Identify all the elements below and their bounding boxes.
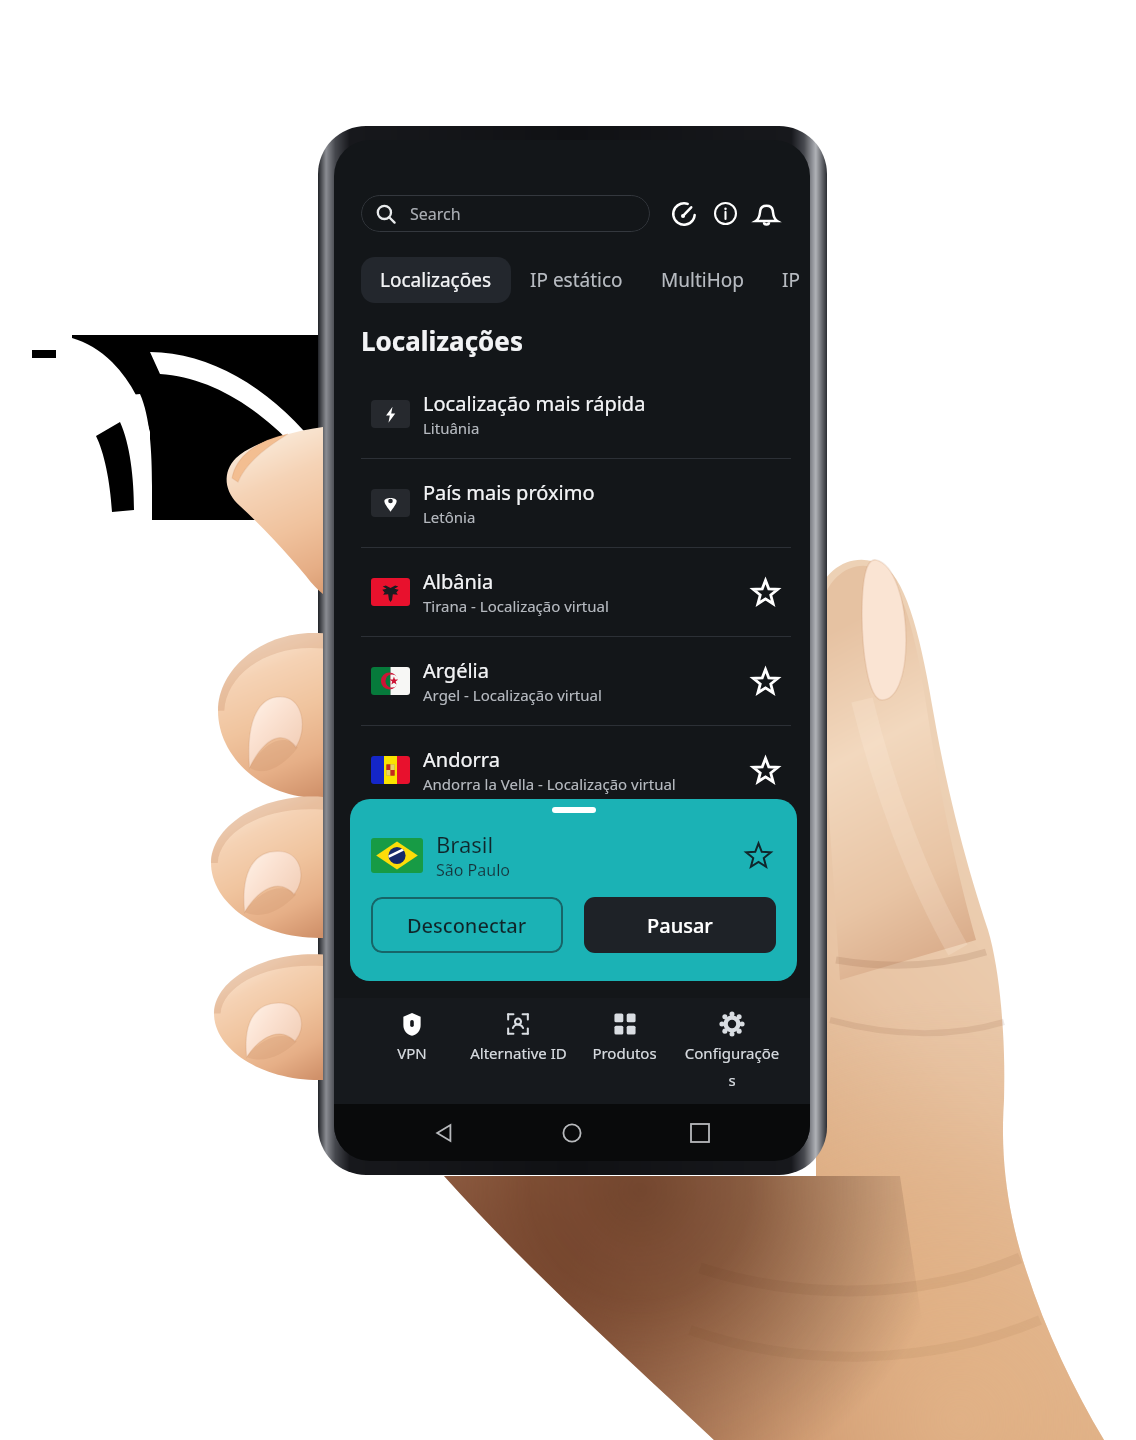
button[interactable]: Localização mais rápida	[334, 370, 810, 458]
staticText: Pausar	[647, 912, 713, 939]
staticText: Letônia	[423, 507, 476, 527]
staticText: MultiHop	[661, 267, 744, 293]
button[interactable]: Pausar	[584, 897, 776, 953]
button[interactable]: Search	[361, 195, 650, 232]
button[interactable]: Notifications	[754, 201, 779, 226]
staticText: Albânia	[423, 568, 494, 595]
staticText: IP estático	[530, 267, 623, 293]
button[interactable]: MultiHop	[642, 257, 763, 303]
button[interactable]: País mais próximo	[334, 459, 810, 547]
button[interactable]: Home	[554, 1115, 590, 1151]
button[interactable]: Back	[426, 1115, 462, 1151]
staticText: IP	[782, 267, 791, 293]
button[interactable]: IP	[763, 257, 810, 303]
staticText: Andorra	[423, 746, 500, 773]
staticText: Configurações	[682, 1043, 782, 1091]
button[interactable]: Brasil	[350, 799, 797, 981]
button[interactable]: Albânia	[334, 548, 810, 636]
staticText: Alternative ID	[470, 1043, 567, 1063]
staticText: País mais próximo	[423, 479, 595, 506]
button[interactable]: Favourite Albânia	[747, 574, 783, 610]
staticText: Argélia	[423, 657, 489, 684]
staticText: Search	[410, 203, 461, 225]
staticText: Produtos	[592, 1043, 657, 1063]
button[interactable]: Produtos	[571, 998, 678, 1063]
button[interactable]: Configurações	[678, 998, 785, 1091]
button[interactable]: Andorra	[334, 726, 810, 814]
staticText: Andorra la Vella - Localização virtual	[423, 774, 676, 794]
button[interactable]: Speed test	[672, 202, 696, 226]
button[interactable]: Favourite Brasil	[740, 837, 776, 873]
button[interactable]: VPN	[359, 998, 465, 1063]
staticText: Argel - Localização virtual	[423, 685, 602, 705]
staticText: Localizações	[380, 267, 492, 293]
button[interactable]: Desconectar	[371, 897, 563, 953]
staticText: Desconectar	[407, 912, 527, 939]
staticText: Localizações	[361, 323, 523, 358]
button[interactable]: IP estático	[511, 257, 642, 303]
button[interactable]: Information	[714, 202, 737, 225]
staticText: VPN	[397, 1043, 427, 1063]
button[interactable]: Favourite Andorra	[747, 752, 783, 788]
button[interactable]: Favourite Argélia	[747, 663, 783, 699]
staticText: São Paulo	[436, 859, 510, 881]
button[interactable]: Localizações	[361, 257, 511, 303]
button[interactable]: Argélia	[334, 637, 810, 725]
staticText: Brasil	[436, 829, 494, 859]
button[interactable]: Recents	[682, 1115, 718, 1151]
staticText: Lituânia	[423, 418, 480, 438]
staticText: Tirana - Localização virtual	[423, 596, 609, 616]
staticText: Localização mais rápida	[423, 390, 646, 417]
button[interactable]: Alternative ID	[465, 998, 571, 1063]
